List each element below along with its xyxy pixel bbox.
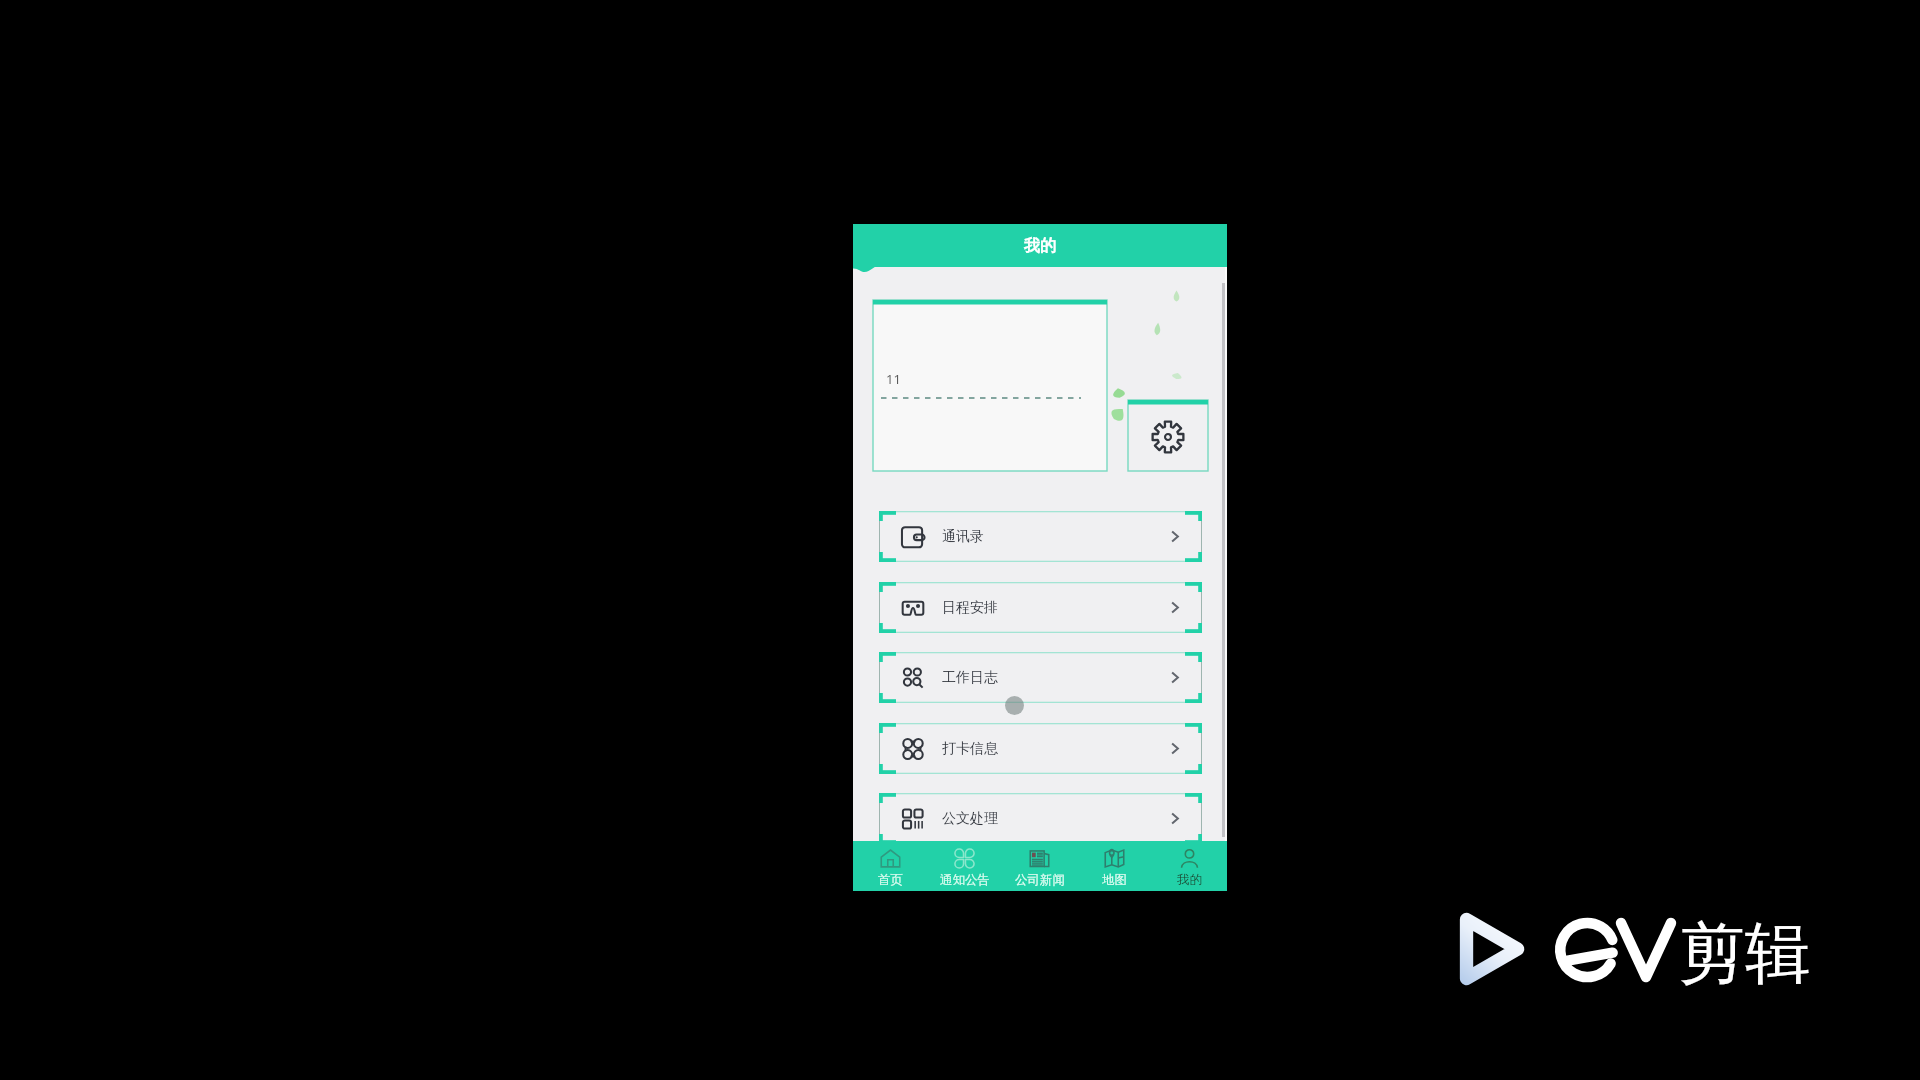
staticText: 我的 <box>1177 872 1202 888</box>
button[interactable]: 地图 <box>1077 841 1152 891</box>
staticText: 日程安排 <box>942 599 998 617</box>
staticText: 我的 <box>1024 236 1056 256</box>
staticText: 公文处理 <box>942 810 998 828</box>
staticText: 公司新闻 <box>1015 872 1065 888</box>
button[interactable]: 公文处理 <box>879 793 1202 844</box>
staticText: 首页 <box>878 872 903 888</box>
button[interactable]: 日程安排 <box>879 582 1202 633</box>
button[interactable]: 工作日志 <box>879 652 1202 703</box>
staticText: 地图 <box>1102 872 1127 888</box>
button[interactable]: 打卡信息 <box>879 723 1202 774</box>
staticText: 通讯录 <box>942 528 984 546</box>
button[interactable]: 通讯录 <box>879 511 1202 562</box>
staticText: 打卡信息 <box>942 740 998 758</box>
button[interactable]: Settings <box>1128 400 1208 471</box>
button[interactable]: 我的 <box>1152 841 1227 891</box>
button[interactable]: 通知公告 <box>927 841 1002 891</box>
staticText: 工作日志 <box>942 669 998 687</box>
staticText: 剪辑 <box>1679 912 1811 995</box>
button[interactable]: 公司新闻 <box>1002 841 1077 891</box>
staticText: 11 <box>886 370 901 388</box>
button[interactable]: Profile <box>873 300 1107 471</box>
staticText: 通知公告 <box>940 872 990 888</box>
button[interactable]: 首页 <box>853 841 927 891</box>
